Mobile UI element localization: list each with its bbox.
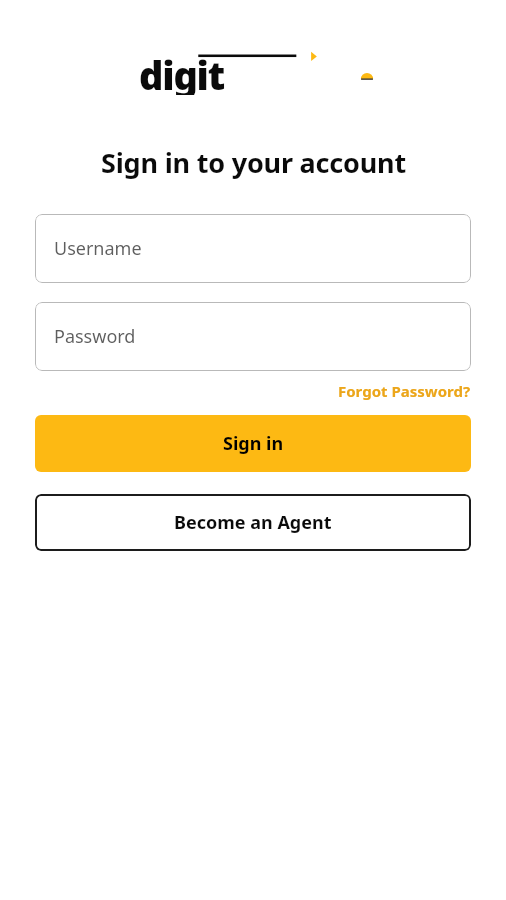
staticText: Forgot Password? bbox=[338, 381, 471, 401]
staticText: Password bbox=[54, 324, 136, 349]
staticText: digit bbox=[139, 49, 225, 95]
staticText: Sign in bbox=[223, 431, 284, 456]
button[interactable]: Become an Agent bbox=[35, 494, 471, 551]
other: digitpartner logo bbox=[0, 49, 506, 95]
button[interactable]: Sign in bbox=[35, 415, 471, 472]
button[interactable]: Username bbox=[35, 214, 471, 283]
staticText: Become an Agent bbox=[174, 510, 332, 535]
button[interactable]: Password bbox=[35, 302, 471, 371]
staticText: Username bbox=[54, 236, 142, 261]
staticText: Sign in to your account bbox=[101, 144, 406, 181]
button[interactable]: Forgot Password? bbox=[338, 381, 471, 401]
